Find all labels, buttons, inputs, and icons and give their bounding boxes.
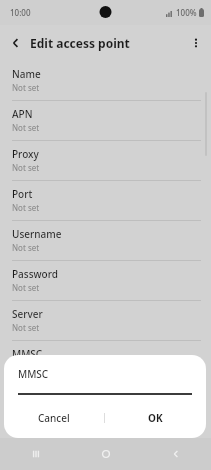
button[interactable]: Back [5,32,27,54]
staticText: Port [12,187,33,201]
button[interactable]: More options [185,32,207,54]
staticText: Password [12,267,58,281]
button[interactable]: APN [0,100,211,140]
button[interactable]: Password [0,260,211,300]
staticText: 10:00 [10,7,31,18]
staticText: APN [12,107,33,121]
staticText: Proxy [12,147,39,161]
button[interactable]: Cancel [4,405,104,431]
button[interactable]: Proxy [0,140,211,180]
staticText: OK [148,411,163,425]
staticText: Not set [12,122,40,133]
staticText: 100% [176,7,197,18]
staticText: Not set [12,202,40,213]
staticText: Cancel [38,411,70,425]
button[interactable]: Server [0,300,211,340]
staticText: MMSC [12,347,43,361]
button[interactable]: Username [0,220,211,260]
staticText: Server [12,307,43,321]
staticText: Not set [12,82,40,93]
button[interactable]: Port [0,180,211,220]
button[interactable]: MMSC [0,340,211,380]
staticText: Edit access point [30,35,130,51]
staticText: Not set [12,242,40,253]
staticText: Username [12,227,62,241]
button[interactable]: OK [105,405,206,431]
staticText: MMSC [18,367,49,381]
staticText: Name [12,67,41,81]
staticText: Not set [12,162,40,173]
button[interactable]: Name [0,60,211,100]
button[interactable]: Home [71,438,141,470]
button[interactable]: Recents [0,438,71,470]
staticText: Not set [12,362,40,373]
staticText: Not set [12,322,40,333]
staticText: Not set [12,282,40,293]
